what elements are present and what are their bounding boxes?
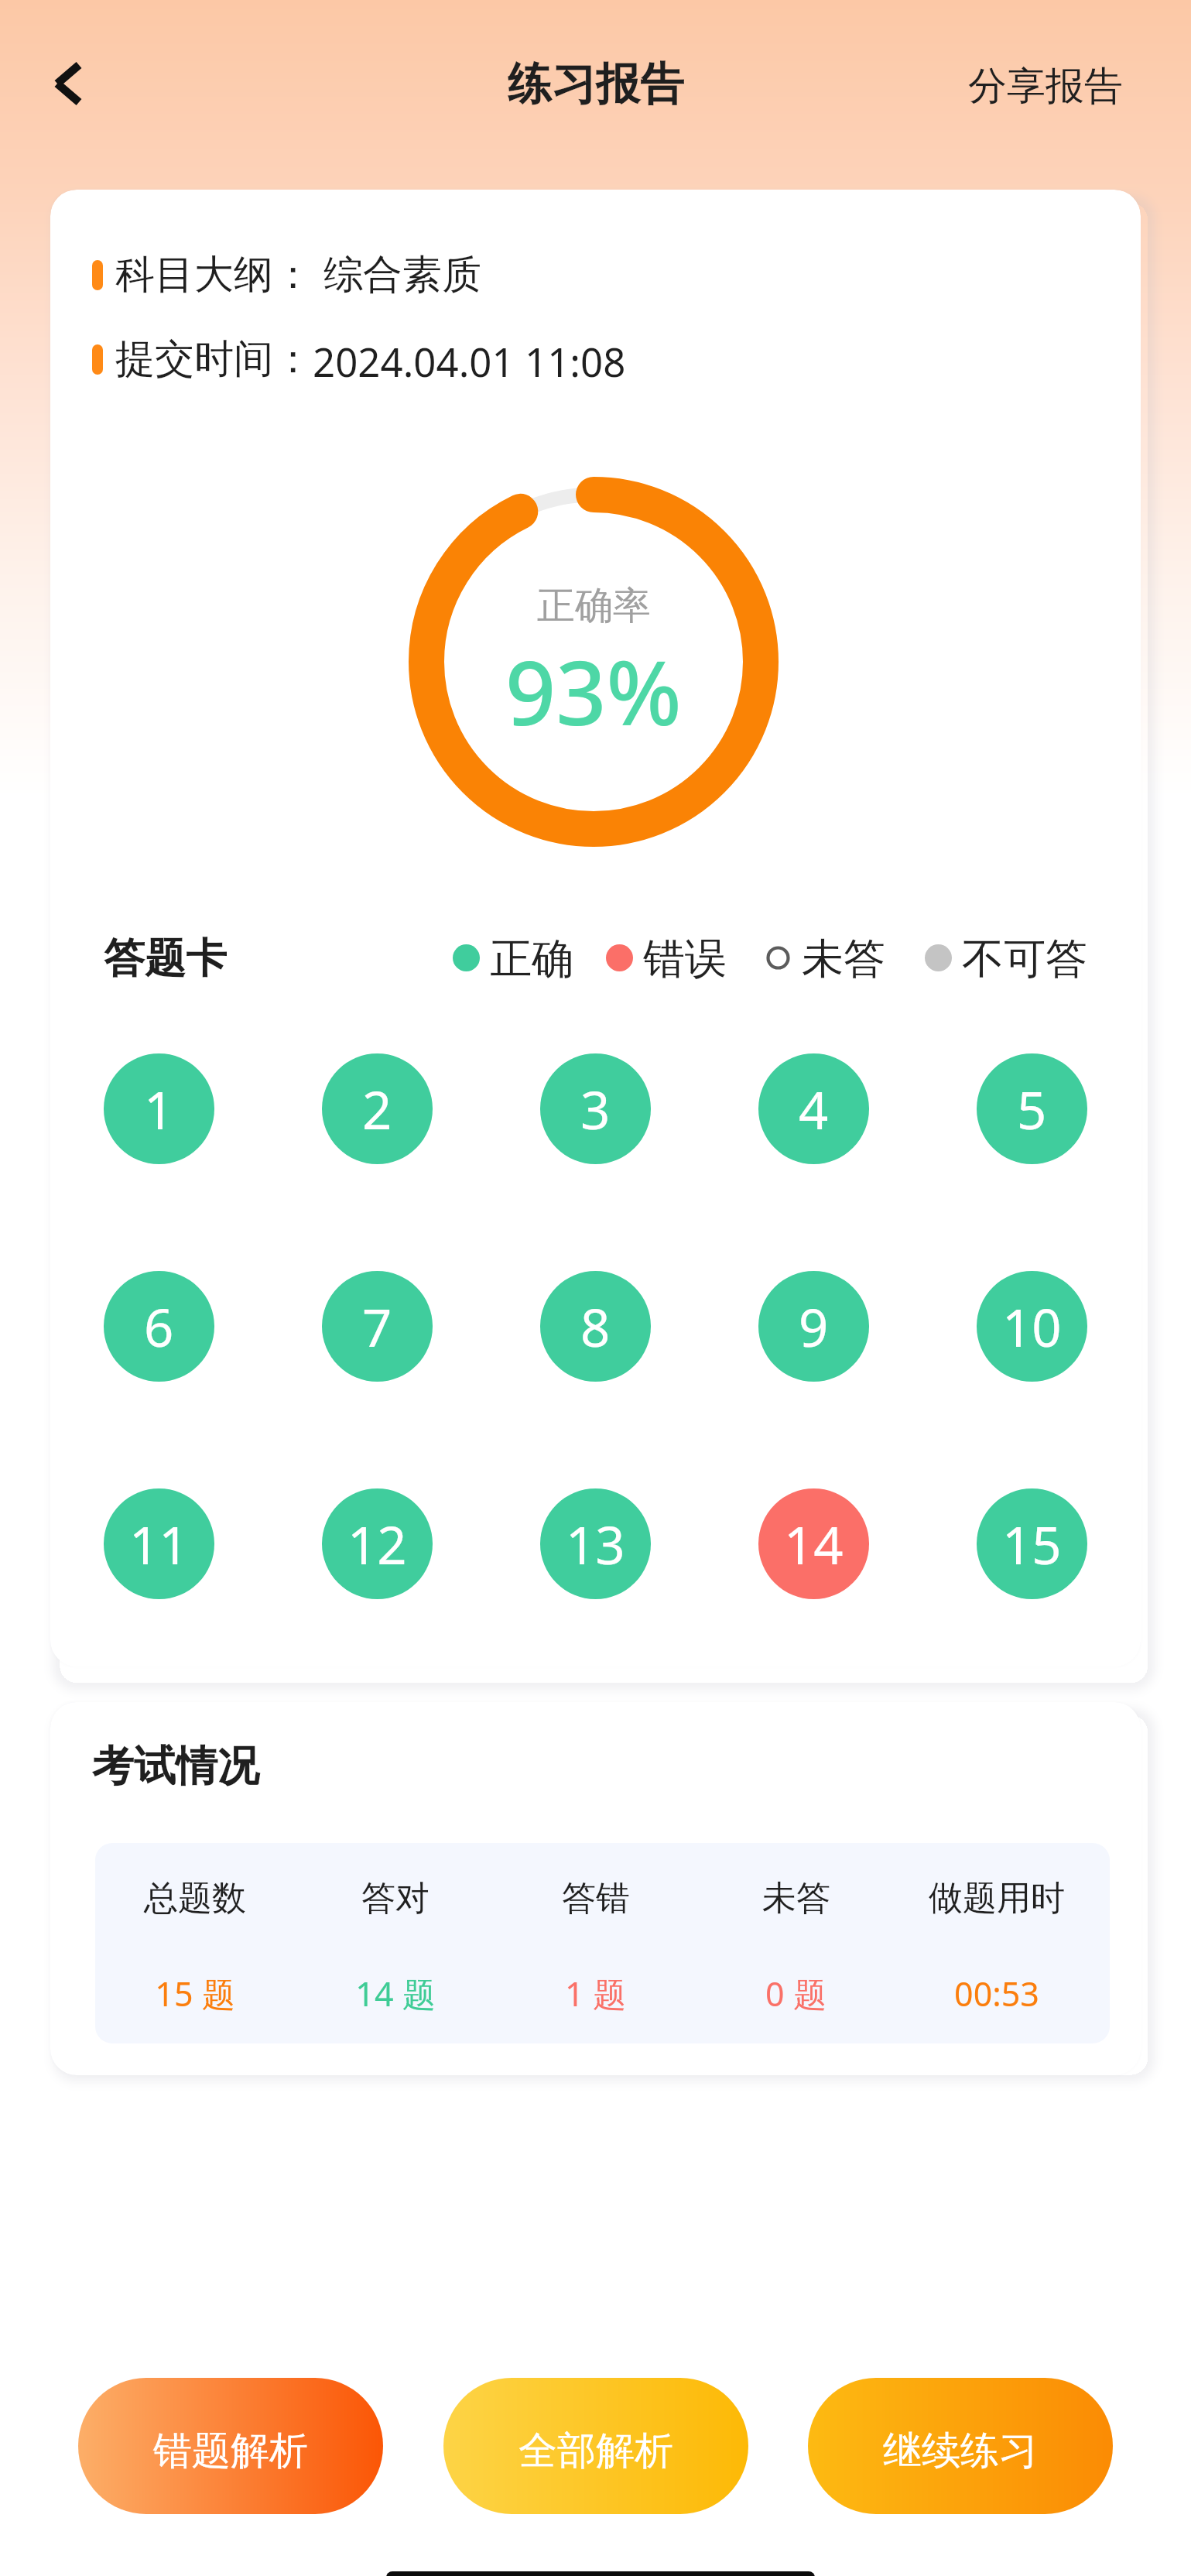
button[interactable]: 分享报告: [957, 50, 1134, 123]
staticText: 93%: [505, 631, 682, 751]
staticText: 12: [347, 1509, 407, 1579]
staticText: 全部解析: [518, 2427, 673, 2475]
button[interactable]: 12: [322, 1488, 433, 1599]
staticText: 未答: [762, 1877, 830, 1920]
staticText: 答对: [361, 1877, 430, 1920]
button[interactable]: 10: [977, 1271, 1087, 1382]
staticText: 15: [1002, 1509, 1062, 1579]
staticText: 科目大纲：: [115, 250, 313, 300]
staticText: 总题数: [144, 1877, 246, 1920]
staticText: 1: [144, 1074, 174, 1144]
staticText: 2: [362, 1074, 392, 1144]
button[interactable]: 6: [104, 1271, 214, 1382]
button[interactable]: 全部解析: [443, 2378, 748, 2514]
button[interactable]: 2: [322, 1053, 433, 1164]
staticText: 3: [580, 1074, 611, 1144]
staticText: 答题卡: [104, 933, 227, 982]
staticText: 练习报告: [508, 57, 684, 112]
button[interactable]: 15: [977, 1488, 1087, 1599]
button[interactable]: 4: [758, 1053, 869, 1164]
button[interactable]: 7: [322, 1271, 433, 1382]
staticText: 综合素质: [323, 250, 481, 300]
staticText: 8: [580, 1291, 611, 1362]
staticText: 未答: [802, 933, 885, 982]
staticText: 做题用时: [929, 1877, 1065, 1920]
button[interactable]: 继续练习: [808, 2378, 1113, 2514]
staticText: 13: [566, 1509, 625, 1579]
staticText: 考试情况: [92, 1740, 259, 1793]
staticText: 正确: [490, 933, 573, 982]
button[interactable]: 9: [758, 1271, 869, 1382]
staticText: 4: [799, 1074, 829, 1144]
staticText: 11: [129, 1509, 189, 1579]
staticText: 10: [1002, 1291, 1062, 1362]
button[interactable]: 13: [540, 1488, 651, 1599]
button[interactable]: 错题解析: [78, 2378, 383, 2514]
staticText: 14 题: [355, 1971, 436, 2016]
staticText: 正确率: [537, 582, 651, 630]
button[interactable]: 1: [104, 1053, 214, 1164]
staticText: 14: [784, 1509, 844, 1579]
button[interactable]: 14: [758, 1488, 869, 1599]
staticText: 不可答: [962, 933, 1087, 982]
staticText: 9: [799, 1291, 829, 1362]
button[interactable]: 3: [540, 1053, 651, 1164]
staticText: 1 题: [565, 1971, 626, 2016]
button[interactable]: 11: [104, 1488, 214, 1599]
staticText: 错题解析: [153, 2427, 308, 2475]
button[interactable]: Back: [19, 45, 104, 122]
staticText: 分享报告: [968, 62, 1123, 111]
staticText: 15 题: [155, 1971, 235, 2016]
staticText: 答错: [562, 1877, 630, 1920]
staticText: 提交时间：: [115, 334, 313, 384]
staticText: 继续练习: [883, 2427, 1038, 2475]
staticText: 0 题: [765, 1971, 827, 2016]
button[interactable]: 8: [540, 1271, 651, 1382]
staticText: 6: [144, 1291, 174, 1362]
button[interactable]: 5: [977, 1053, 1087, 1164]
staticText: 错误: [643, 933, 727, 982]
staticText: 2024.04.01 11:08: [313, 334, 626, 384]
staticText: 5: [1017, 1074, 1047, 1144]
staticText: 00:53: [954, 1971, 1039, 2016]
staticText: 7: [362, 1291, 392, 1362]
